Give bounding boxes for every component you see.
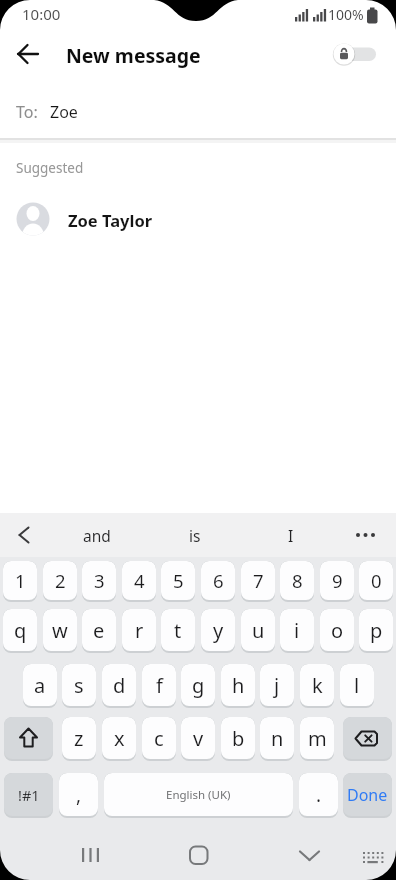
staticText: To: [16,101,38,123]
button[interactable]: t [161,609,195,653]
button[interactable]: s [62,664,96,708]
staticText: n [271,725,284,752]
button[interactable]: 7 [241,561,275,602]
staticText: u [252,617,265,644]
staticText: g [192,672,205,699]
staticText: w [52,617,68,644]
staticText: New message [66,42,201,69]
staticText: o [331,617,344,644]
staticText: p [370,617,383,644]
button[interactable]: d [102,664,136,708]
staticText: 7 [253,568,264,593]
staticText: 3 [94,568,105,593]
staticText: x [114,725,125,752]
button[interactable]: o [320,609,354,653]
button[interactable]: 8 [280,561,314,602]
button[interactable]: 6 [201,561,235,602]
button[interactable]: 5 [161,561,195,602]
staticText: 8 [292,568,303,593]
button[interactable]: Zoe Taylor [0,196,396,242]
staticText: m [308,725,327,752]
staticText: Suggested [16,159,84,177]
button[interactable] [180,838,216,874]
button[interactable] [354,840,388,874]
staticText: Zoe [50,101,78,123]
button[interactable]: 9 [320,561,354,602]
staticText: English (UK) [166,787,231,803]
staticText: 1 [15,568,26,593]
button[interactable]: g [181,664,215,708]
button[interactable]: c [142,717,176,761]
button[interactable]: w [43,609,77,653]
staticText: Zoe Taylor [68,209,153,231]
staticText: e [93,617,105,644]
button[interactable]: h [221,664,255,708]
staticText: s [74,672,84,699]
staticText: . [316,782,322,808]
button[interactable]: 0 [359,561,393,602]
button[interactable] [330,40,382,68]
staticText: l [354,672,360,699]
staticText: , [76,782,82,808]
button[interactable] [72,838,108,874]
button[interactable]: v [181,717,215,761]
button[interactable]: l [340,664,374,708]
staticText: f [156,672,163,699]
button[interactable]: is [155,513,235,557]
button[interactable]: x [102,717,136,761]
button[interactable] [10,36,46,72]
button[interactable]: 2 [43,561,77,602]
button[interactable]: e [82,609,116,653]
staticText: is [189,525,201,546]
staticText: i [294,617,300,644]
button[interactable]: English (UK) [104,773,293,818]
staticText: Done [347,784,388,806]
button[interactable]: !#1 [4,773,53,818]
staticText: r [135,617,144,644]
staticText: q [14,617,27,644]
button[interactable] [4,717,53,761]
button[interactable]: To: [0,84,396,138]
button[interactable]: y [201,609,235,653]
staticText: 5 [173,568,184,593]
button[interactable]: m [300,717,334,761]
button[interactable]: b [221,717,255,761]
staticText: and [83,525,111,546]
button[interactable]: 4 [122,561,156,602]
staticText: v [193,725,204,752]
button[interactable]: p [359,609,393,653]
button[interactable]: n [260,717,294,761]
staticText: 4 [134,568,145,593]
staticText: 9 [332,568,343,593]
staticText: d [113,672,126,699]
button[interactable]: Done [343,773,392,818]
button[interactable]: r [122,609,156,653]
staticText: z [74,725,84,752]
staticText: j [274,672,280,699]
button[interactable]: k [300,664,334,708]
button[interactable]: I [251,513,331,557]
staticText: a [34,672,46,699]
button[interactable]: and [57,513,137,557]
button[interactable]: i [280,609,314,653]
button[interactable] [292,838,328,874]
staticText: 2 [55,568,66,593]
staticText: 10:00 [22,4,61,24]
button[interactable]: q [3,609,37,653]
button[interactable]: 1 [3,561,37,602]
staticText: k [312,672,323,699]
button[interactable] [343,717,392,761]
staticText: 100% [328,5,364,24]
button[interactable]: a [23,664,57,708]
button[interactable]: z [62,717,96,761]
button[interactable]: , [59,773,98,818]
button[interactable]: u [241,609,275,653]
button[interactable]: 3 [82,561,116,602]
button[interactable]: . [299,773,338,818]
staticText: b [232,725,245,752]
staticText: t [174,617,182,644]
staticText: h [232,672,245,699]
button[interactable]: j [260,664,294,708]
staticText: 6 [213,568,224,593]
button[interactable]: f [142,664,176,708]
